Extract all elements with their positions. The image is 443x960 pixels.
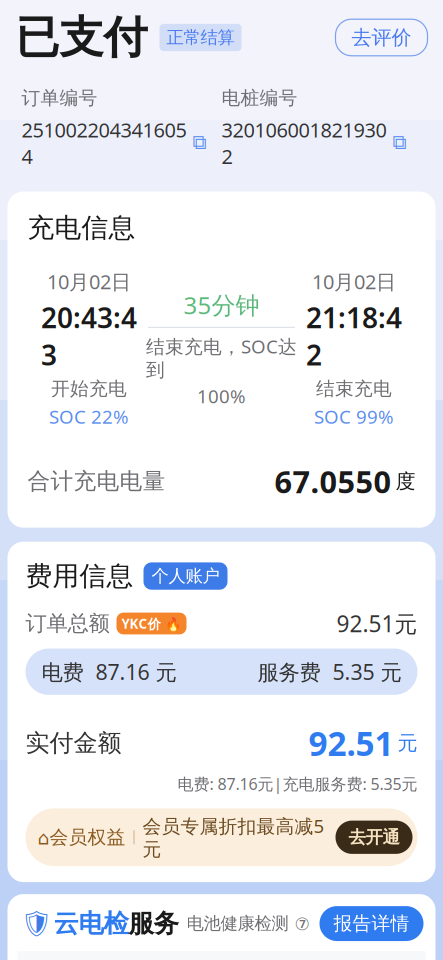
staticText: SOC 22% [49, 404, 129, 429]
staticText: 电桩编号 [221, 86, 297, 109]
staticText: 3201060018219302 [221, 116, 386, 169]
staticText: 开始充电 [51, 377, 127, 400]
staticText: ⧉ [192, 133, 206, 153]
button[interactable]: Copy 电桩编号 [392, 133, 406, 153]
staticText: 92.51 [308, 721, 393, 765]
staticText: 结束充电 [316, 377, 392, 400]
staticText: 10月02日 [47, 268, 131, 295]
button[interactable]: Copy 订单编号 [192, 133, 206, 153]
staticText: YKC价 🔥 [121, 615, 181, 632]
staticText: 20:43:43 [41, 299, 137, 373]
staticText: 费用信息 [25, 560, 133, 592]
staticText: 已支付 [15, 10, 147, 64]
staticText: 会员专属折扣最高减5元 [142, 813, 324, 861]
staticText: 正常结算 [166, 27, 234, 48]
staticText: 服务 [128, 908, 178, 939]
staticText: 度 [395, 469, 415, 494]
staticText: 去评价 [351, 25, 411, 50]
staticText: ⌂会员权益 [37, 826, 125, 849]
staticText: 报告详情 [333, 912, 409, 935]
staticText: 充电信息 [27, 212, 135, 244]
staticText: 元 [397, 731, 417, 755]
staticText: 云电检 [53, 908, 128, 939]
staticText: 10月02日 [312, 268, 396, 295]
staticText: 结束充电，SOC达到 [146, 334, 297, 381]
staticText: 电费: 87.16元|充电服务费: 5.35元 [177, 773, 417, 794]
staticText: 订单总额 [25, 610, 109, 637]
button[interactable]: 报告详情 [319, 906, 423, 941]
staticText: 个人账户 [151, 565, 219, 587]
button[interactable]: 去开通 [335, 821, 412, 854]
staticText: 订单编号 [21, 86, 97, 109]
staticText: 电池健康检测 ⑦ [186, 913, 310, 934]
staticText: 实付金额 [25, 728, 121, 758]
staticText: 2510022043416054 [21, 116, 186, 169]
staticText: 合计充电电量 [27, 467, 165, 495]
staticText: 67.0550 [274, 461, 391, 502]
staticText: 去开通 [348, 827, 399, 848]
staticText: 100% [197, 383, 246, 408]
staticText: SOC 99% [314, 404, 394, 429]
staticText: 服务费 5.35 元 [257, 657, 401, 686]
staticText: 92.51元 [336, 608, 417, 638]
staticText: 21:18:42 [306, 299, 402, 373]
staticText: 35分钟 [183, 289, 259, 321]
button[interactable]: 去评价 [335, 19, 427, 56]
staticText: 电费 87.16 元 [41, 657, 176, 686]
staticText: 🛡 [20, 909, 52, 938]
staticText: ⧉ [392, 133, 406, 153]
